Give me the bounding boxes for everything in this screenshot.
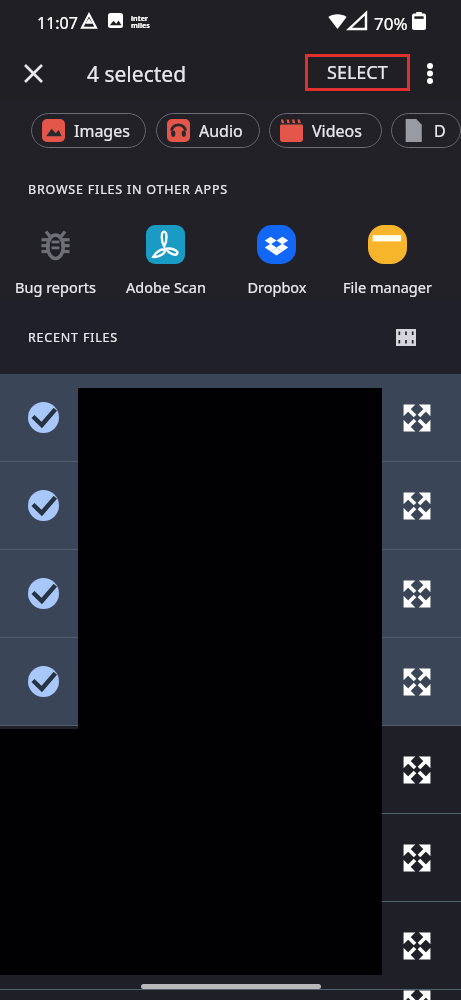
staticText: inter	[131, 14, 148, 24]
button[interactable]: Close	[15, 55, 51, 91]
button[interactable]	[0, 638, 461, 725]
button[interactable]: Videos	[269, 113, 382, 148]
button[interactable]	[0, 550, 461, 637]
button[interactable]	[0, 902, 461, 989]
button[interactable]	[0, 990, 461, 1000]
button[interactable]: Adobe Scan	[110, 218, 221, 300]
button[interactable]: Documents	[391, 113, 461, 148]
staticText: Adobe Scan	[126, 277, 206, 297]
button[interactable]: Bug reports	[0, 218, 110, 300]
staticText: Audio	[199, 120, 243, 142]
staticText: File manager	[343, 277, 432, 297]
staticText: Bug reports	[15, 277, 96, 297]
staticText: Images	[74, 120, 130, 142]
staticText: miles	[131, 21, 150, 31]
staticText: RECENT FILES	[28, 329, 118, 346]
button[interactable]	[0, 814, 461, 901]
button[interactable]: File manager	[332, 218, 443, 300]
button[interactable]: Audio	[156, 113, 260, 148]
staticText: BROWSE FILES IN OTHER APPS	[28, 181, 228, 198]
staticText: Documents	[434, 120, 445, 142]
staticText: 70%	[374, 12, 408, 35]
staticText: 11:07	[37, 12, 78, 34]
button[interactable]: SELECT	[305, 54, 410, 91]
button[interactable]	[0, 462, 461, 549]
button[interactable]	[0, 374, 461, 461]
staticText: SELECT	[327, 60, 388, 85]
button[interactable]: Dropbox	[221, 218, 332, 300]
staticText: 4 selected	[87, 60, 187, 89]
staticText: Videos	[312, 120, 362, 142]
button[interactable]: Grid view	[391, 322, 421, 352]
button[interactable]: Images	[31, 113, 146, 148]
button[interactable]	[0, 726, 461, 813]
staticText: Dropbox	[247, 277, 307, 297]
button[interactable]: More options	[413, 56, 447, 90]
